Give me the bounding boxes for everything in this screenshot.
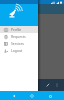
button[interactable]: Profile (0, 26, 38, 33)
staticText: Profile (11, 27, 22, 32)
button[interactable]: Edit (45, 82, 51, 88)
button[interactable]: Services (0, 40, 38, 47)
staticText: Services (11, 41, 24, 46)
button[interactable]: Recents (46, 92, 54, 100)
staticText: Logout (11, 48, 23, 53)
button[interactable]: More options (54, 82, 60, 88)
button[interactable]: Back (10, 92, 18, 100)
button[interactable]: Logout (0, 47, 38, 54)
staticText: Requests (11, 34, 26, 39)
button[interactable]: Home (28, 92, 36, 100)
button[interactable]: Requests (0, 33, 38, 40)
